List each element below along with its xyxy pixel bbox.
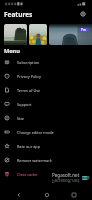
button[interactable]: Change editor mode bbox=[0, 125, 92, 139]
staticText: Menu bbox=[4, 47, 20, 55]
button[interactable] bbox=[4, 24, 27, 45]
staticText: Pegasoft.net bbox=[52, 172, 80, 178]
staticText: Star bbox=[17, 116, 25, 121]
button[interactable]: Back bbox=[14, 190, 23, 199]
button[interactable]: Clear cache bbox=[0, 167, 92, 181]
button[interactable]: Recents bbox=[69, 190, 78, 199]
button[interactable]: Pro bbox=[49, 24, 92, 45]
button[interactable]: Settings bbox=[78, 9, 88, 19]
staticText: Terms of Use bbox=[17, 88, 41, 93]
staticText: Change editor mode bbox=[17, 130, 54, 135]
button[interactable] bbox=[29, 24, 47, 45]
staticText: Rate our app bbox=[17, 144, 40, 149]
button[interactable]: Support bbox=[0, 97, 92, 111]
button[interactable]: Subscription bbox=[0, 55, 92, 69]
staticText: Pro bbox=[81, 28, 87, 32]
staticText: Remove watermark bbox=[17, 158, 52, 163]
button[interactable]: Rate our app bbox=[0, 139, 92, 153]
button[interactable]: Home bbox=[42, 190, 51, 199]
staticText: Support bbox=[17, 102, 32, 107]
staticText: Pegasoft.net bbox=[52, 178, 80, 184]
staticText: Clear cache bbox=[17, 172, 38, 177]
button[interactable]: Star bbox=[0, 111, 92, 125]
button[interactable]: Terms of Use bbox=[0, 83, 92, 97]
staticText: Privacy Policy bbox=[17, 74, 41, 79]
button[interactable]: Privacy Policy bbox=[0, 69, 92, 83]
button[interactable]: Remove watermark bbox=[0, 153, 92, 167]
staticText: Subscription bbox=[17, 60, 40, 65]
staticText: Features bbox=[4, 10, 33, 19]
